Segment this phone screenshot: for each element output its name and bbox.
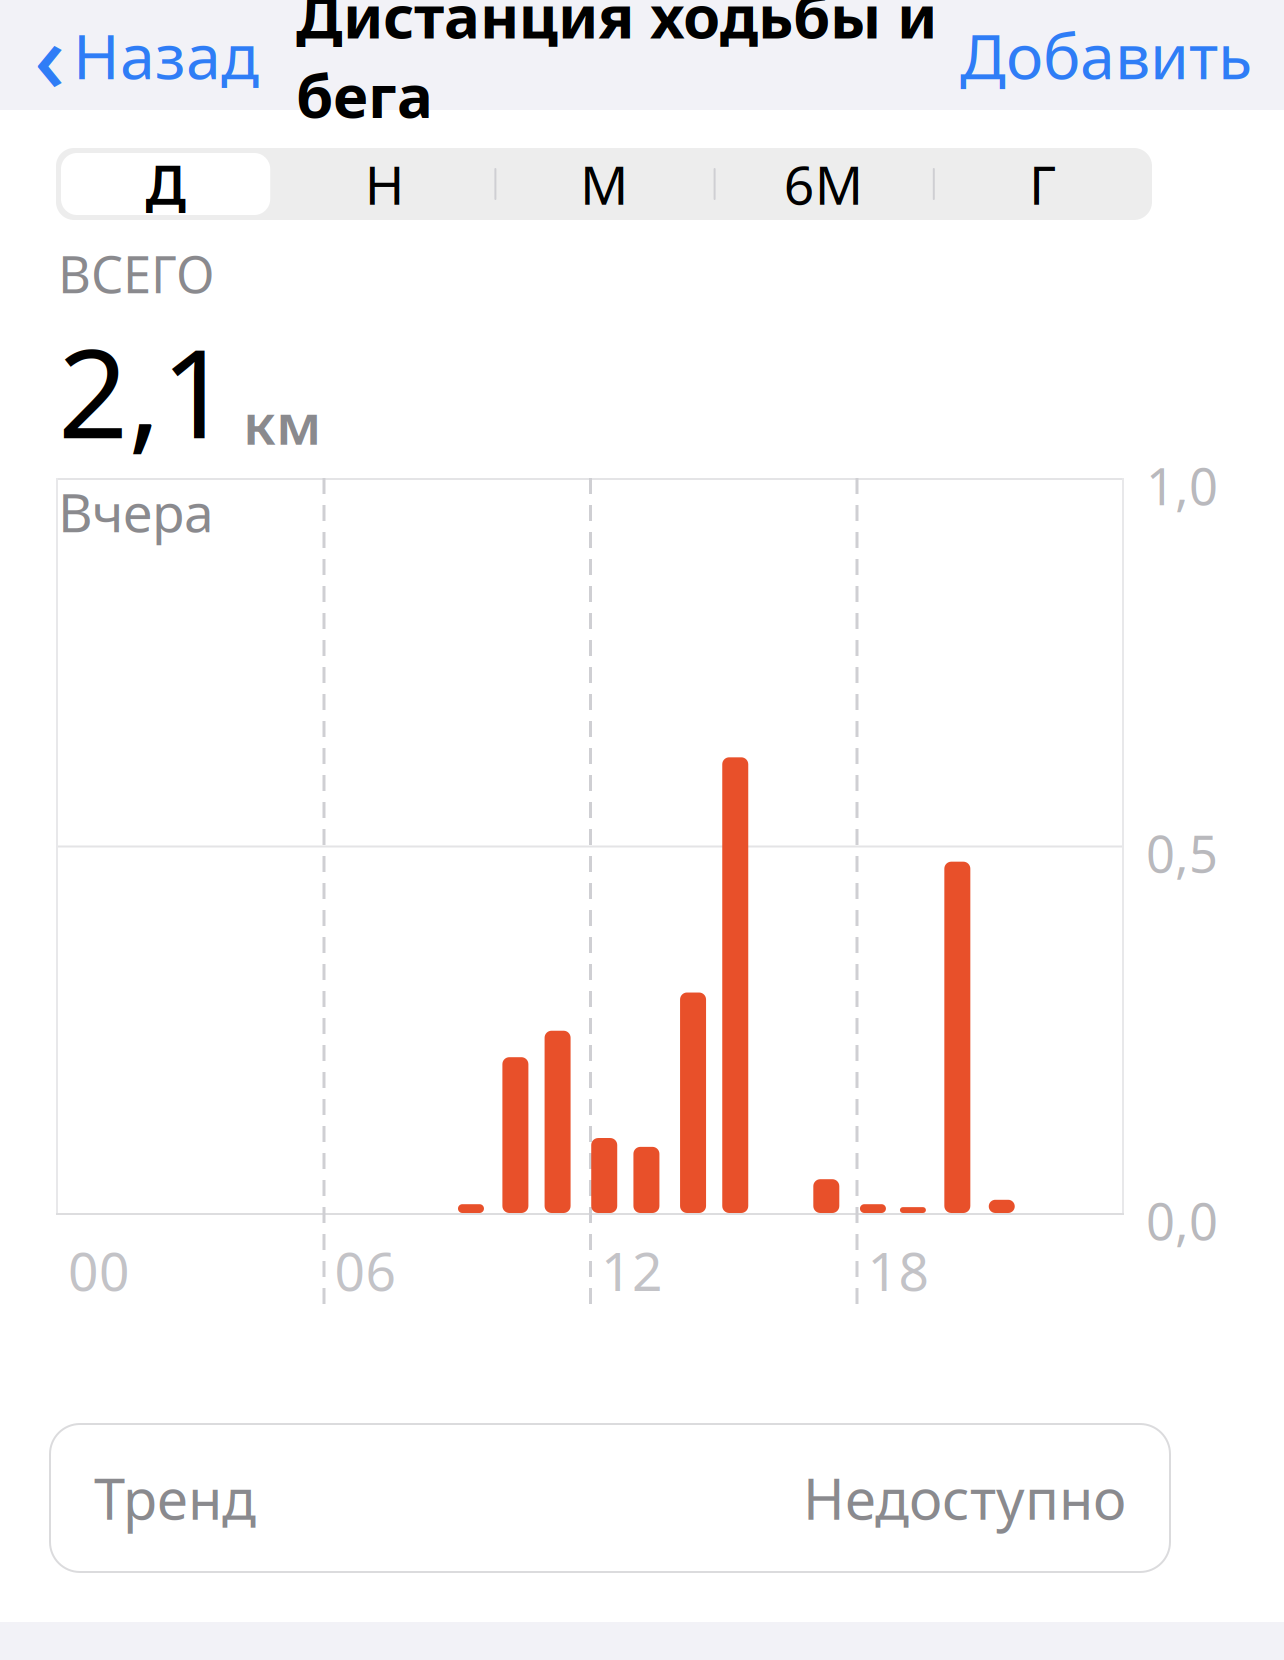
- staticText: М: [580, 149, 628, 219]
- staticText: ВСЕГО: [58, 240, 215, 307]
- staticText: км: [243, 386, 321, 460]
- staticText: 12: [601, 1235, 663, 1306]
- button[interactable]: Д: [56, 148, 275, 220]
- staticText: 1,0: [1146, 452, 1218, 519]
- button[interactable]: Добавить: [960, 0, 1284, 110]
- staticText: Вчера: [58, 476, 214, 547]
- staticText: Дистанция ходьбы и бега: [296, 0, 937, 135]
- staticText: 0,0: [1146, 1187, 1218, 1254]
- staticText: 6М: [784, 149, 863, 219]
- staticText: Н: [365, 149, 405, 219]
- staticText: ‹: [34, 0, 65, 119]
- staticText: Назад: [73, 13, 259, 97]
- button[interactable]: Г: [933, 148, 1152, 220]
- staticText: 18: [867, 1235, 929, 1306]
- staticText: 2,1: [58, 309, 231, 472]
- button[interactable]: 6М: [714, 148, 933, 220]
- staticText: Добавить: [960, 13, 1252, 97]
- button[interactable]: ‹: [0, 0, 273, 110]
- staticText: Г: [1029, 149, 1056, 219]
- button[interactable]: Н: [275, 148, 494, 220]
- staticText: 06: [334, 1235, 396, 1306]
- button[interactable]: М: [494, 148, 714, 220]
- staticText: Д: [146, 149, 186, 219]
- button[interactable]: Тренд: [50, 1424, 1170, 1572]
- staticText: Недоступно: [803, 1461, 1126, 1535]
- staticText: 00: [68, 1235, 130, 1306]
- staticText: 0,5: [1146, 819, 1218, 887]
- staticText: Тренд: [94, 1461, 256, 1535]
